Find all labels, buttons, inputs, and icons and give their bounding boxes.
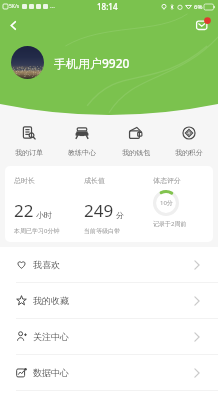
staticText: 教练中心 (68, 148, 96, 157)
staticText: 我的订单 (15, 148, 43, 157)
staticText: 我的收藏 (33, 295, 69, 306)
staticText: 我喜欢 (33, 259, 60, 270)
staticText: 5K/s (9, 3, 20, 10)
button[interactable]: 我的收藏 (0, 283, 218, 318)
staticText: 成长值 (84, 176, 105, 185)
button[interactable]: 我的积分 (164, 115, 214, 157)
button[interactable]: 手机用户9920 (11, 46, 218, 79)
staticText: 我的积分 (175, 148, 203, 157)
button[interactable]: 我的订单 (4, 115, 54, 157)
staticText: 记录于2周前 (153, 220, 187, 228)
staticText: 总时长 (14, 176, 35, 185)
staticText: 小时 (36, 210, 52, 220)
button[interactable]: 教练中心 (57, 115, 107, 157)
staticText: 我的钱包 (122, 148, 150, 157)
staticText: ··· (50, 3, 55, 11)
button[interactable]: 我的钱包 (111, 115, 161, 157)
button[interactable]: 我喜欢 (0, 247, 218, 282)
staticText: 6% (194, 3, 203, 11)
staticText: 数据中心 (33, 367, 69, 378)
button[interactable]: 数据中心 (0, 355, 218, 390)
button[interactable]: Back (2, 14, 24, 36)
staticText: 18:14 (97, 1, 118, 12)
staticText: 本周已学习0分钟 (14, 227, 60, 235)
button[interactable]: 关注中心 (0, 319, 218, 354)
staticText: 关注中心 (33, 331, 69, 342)
button[interactable]: Messages (192, 14, 214, 36)
staticText: 22 (14, 199, 34, 222)
staticText: 手机用户9920 (54, 55, 130, 71)
staticText: 10分 (160, 199, 173, 207)
staticText: 当前等级白带 (84, 227, 120, 235)
staticText: 249 (84, 199, 114, 222)
staticText: 体态评分 (153, 176, 181, 185)
staticText: 分 (116, 210, 124, 220)
